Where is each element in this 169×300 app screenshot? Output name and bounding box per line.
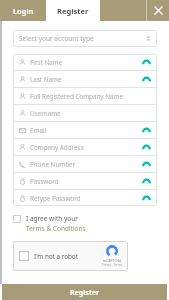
staticText: Register bbox=[57, 6, 89, 16]
staticText: First Name bbox=[30, 58, 63, 67]
button[interactable]: Full Registered Company Name bbox=[13, 88, 157, 104]
staticText: Register bbox=[70, 287, 100, 297]
staticText: Select your account type bbox=[19, 34, 94, 43]
button[interactable]: Close bbox=[147, 0, 169, 21]
button[interactable]: Select your account type bbox=[13, 30, 157, 47]
staticText: Retype Password bbox=[30, 194, 81, 203]
button[interactable]: Email bbox=[13, 122, 157, 138]
staticText: Phone Number bbox=[30, 160, 76, 169]
button[interactable]: Login bbox=[0, 0, 46, 21]
button[interactable]: I agree with your bbox=[13, 214, 157, 233]
staticText: Username bbox=[30, 109, 61, 118]
button[interactable]: Terms & Conditions bbox=[26, 224, 86, 233]
staticText: Login bbox=[13, 6, 34, 16]
staticText: reCAPTCHA bbox=[103, 258, 122, 263]
staticText: Company Address bbox=[30, 143, 84, 152]
button[interactable]: First Name bbox=[13, 54, 157, 70]
button[interactable]: Phone Number bbox=[13, 156, 157, 172]
staticText: Password bbox=[30, 177, 59, 186]
button[interactable]: I'm not a robot bbox=[13, 241, 128, 271]
staticText: Email bbox=[30, 126, 47, 135]
staticText: Full Registered Company Name bbox=[30, 92, 123, 101]
button[interactable]: Password bbox=[13, 173, 157, 189]
staticText: Privacy - Terms bbox=[102, 263, 122, 267]
button[interactable]: Retype Password bbox=[13, 190, 157, 206]
button[interactable]: Register bbox=[2, 284, 167, 300]
button[interactable]: Last Name bbox=[13, 71, 157, 87]
staticText: I'm not a robot bbox=[34, 252, 78, 261]
staticText: Terms & Conditions bbox=[26, 224, 86, 233]
button[interactable]: Username bbox=[13, 105, 157, 121]
button[interactable]: Register bbox=[46, 0, 100, 21]
staticText: I agree with your bbox=[26, 214, 78, 223]
button[interactable]: Company Address bbox=[13, 139, 157, 155]
staticText: Last Name bbox=[30, 75, 62, 84]
